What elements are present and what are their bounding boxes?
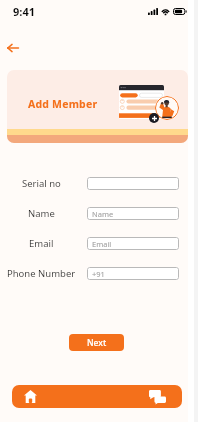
button[interactable]: Home (12, 385, 97, 408)
staticText: Email (29, 237, 54, 250)
staticText: Serial no (22, 177, 61, 190)
button[interactable]: Name (87, 207, 179, 220)
staticText: Name (28, 207, 55, 220)
button[interactable]: Back (1, 36, 24, 59)
staticText: 9:41 (13, 4, 35, 19)
button[interactable]: Messages (97, 385, 182, 408)
staticText: Phone Number (7, 267, 76, 280)
button[interactable]: +91 (87, 267, 179, 280)
staticText: +91 (92, 269, 105, 279)
button[interactable] (87, 177, 179, 190)
button[interactable]: Add (149, 113, 159, 123)
staticText: Name (92, 209, 114, 219)
button[interactable]: Next (69, 334, 124, 351)
staticText: Email (92, 239, 112, 249)
button[interactable]: Email (87, 237, 179, 250)
staticText: Next (87, 337, 107, 349)
staticText: Add Member (28, 97, 98, 111)
